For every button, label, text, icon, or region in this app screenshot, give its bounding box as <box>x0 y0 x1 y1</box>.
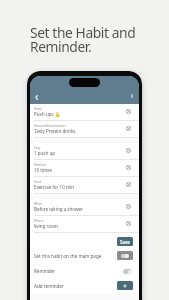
staticText: Medium <box>34 163 46 167</box>
button[interactable]: Hard <box>30 177 139 193</box>
button[interactable]: Clear <box>123 201 133 211</box>
button[interactable]: Reward Attractiveness <box>30 121 139 137</box>
button[interactable]: Clear <box>123 218 133 228</box>
staticText: Reward Attractiveness <box>34 124 66 128</box>
staticText: Tasty Protein drinks <box>34 128 76 134</box>
staticText: Add reminder <box>34 283 117 289</box>
staticText: Push-ups 💪 <box>34 111 61 117</box>
button[interactable]: Medium <box>30 160 139 176</box>
staticText: Where <box>34 219 44 223</box>
staticText: When <box>34 202 43 206</box>
staticText: Habit <box>34 107 42 111</box>
staticText: Exercise for 10 min <box>34 184 75 190</box>
staticText: 1 push up <box>34 150 55 156</box>
staticText: Hard <box>34 180 42 184</box>
button[interactable]: Add reminder <box>117 281 133 290</box>
staticText: 10 times <box>34 167 53 173</box>
button[interactable]: Habit <box>30 104 139 120</box>
button[interactable]: Set this habit on the main page <box>30 248 139 263</box>
staticText: Set this habit on the main page <box>34 253 117 259</box>
button[interactable]: Clear <box>123 106 133 116</box>
button[interactable]: Add reminder <box>30 278 139 293</box>
staticText: Set the Habit and Reminder. <box>30 23 136 56</box>
staticText: Save <box>120 239 130 245</box>
button[interactable]: Clear <box>123 123 133 133</box>
button[interactable]: Easy <box>30 143 139 159</box>
button[interactable]: Clear <box>123 179 133 189</box>
staticText: Reminder <box>34 268 122 274</box>
button[interactable]: Clear <box>123 145 133 155</box>
button[interactable]: Save <box>117 237 133 246</box>
staticText: living room <box>34 223 58 229</box>
button[interactable]: Where <box>30 216 139 232</box>
button[interactable]: Reminder <box>30 263 139 278</box>
button[interactable]: Menu <box>127 91 136 100</box>
staticText: Easy <box>34 146 41 150</box>
staticText: Before taking a shower <box>34 206 83 212</box>
button[interactable]: Back <box>31 92 41 102</box>
button[interactable]: Clear <box>123 162 133 172</box>
button[interactable]: When <box>30 199 139 215</box>
